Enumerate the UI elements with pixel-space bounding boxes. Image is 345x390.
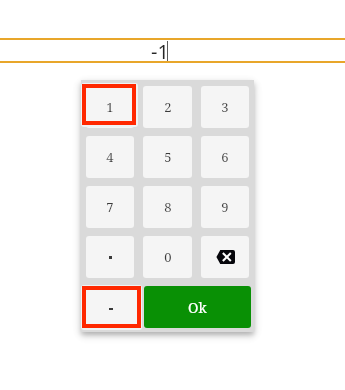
staticText: 8 — [164, 198, 172, 216]
staticText: -1 — [151, 38, 169, 63]
staticText: 2 — [164, 98, 172, 116]
staticText: Ok — [188, 298, 207, 317]
staticText: 4 — [106, 148, 114, 166]
staticText: 3 — [221, 98, 229, 116]
button[interactable]: 1 — [86, 86, 134, 128]
staticText: 0 — [164, 248, 172, 266]
button[interactable]: 6 — [201, 136, 249, 178]
staticText: 6 — [221, 148, 229, 166]
button[interactable]: -1 — [0, 38, 333, 63]
button[interactable]: 8 — [143, 186, 192, 228]
button[interactable]: 4 — [86, 136, 134, 178]
button[interactable]: 9 — [201, 186, 249, 228]
staticText: 7 — [106, 198, 114, 216]
button[interactable]: Ok — [144, 286, 251, 328]
staticText: 5 — [164, 148, 172, 166]
button[interactable]: 7 — [86, 186, 134, 228]
staticText: 9 — [221, 198, 229, 216]
button[interactable]: 5 — [143, 136, 192, 178]
button[interactable]: 2 — [143, 86, 192, 128]
staticText: 1 — [106, 98, 114, 116]
button[interactable]: Backspace — [201, 236, 249, 278]
button[interactable]: Minus sign — [86, 286, 137, 328]
button[interactable]: 0 — [143, 236, 192, 278]
button[interactable]: 3 — [201, 86, 249, 128]
button[interactable]: Decimal point — [86, 236, 134, 278]
